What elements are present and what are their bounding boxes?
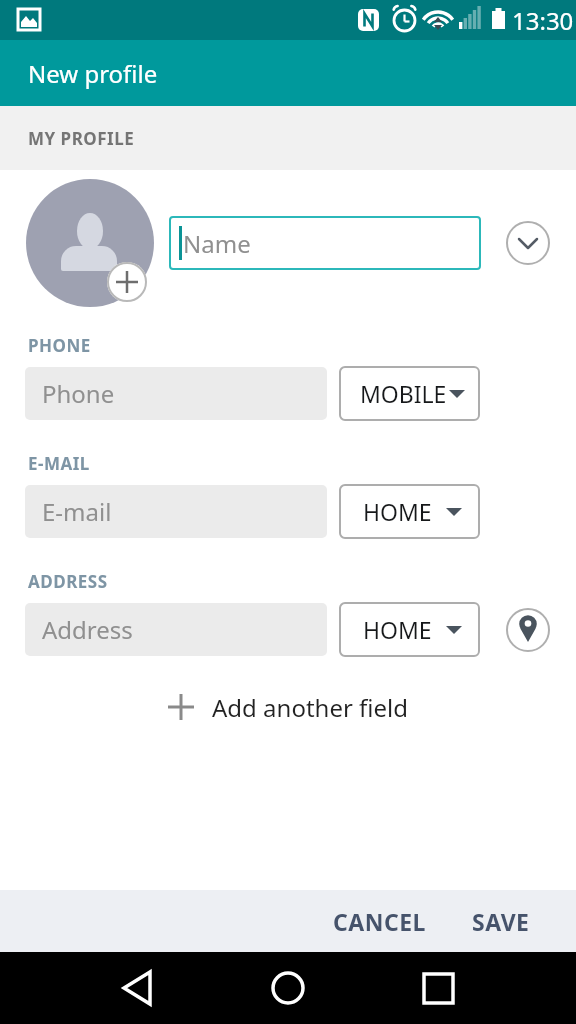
- staticText: Add another field: [212, 691, 409, 724]
- staticText: E-MAIL: [28, 452, 90, 475]
- staticText: SAVE: [472, 906, 530, 937]
- staticText: MY PROFILE: [28, 127, 135, 150]
- staticText: PHONE: [28, 334, 91, 357]
- staticText: CANCEL: [333, 906, 426, 937]
- staticText: 13:30: [512, 4, 574, 37]
- staticText: MOBILE: [360, 378, 447, 409]
- staticText: E-mail: [42, 495, 112, 528]
- staticText: Phone: [42, 377, 115, 410]
- staticText: HOME: [363, 496, 432, 527]
- staticText: Address: [42, 613, 133, 646]
- staticText: Name: [183, 227, 251, 260]
- staticText: ADDRESS: [28, 570, 108, 593]
- staticText: HOME: [363, 614, 432, 645]
- staticText: New profile: [28, 57, 158, 90]
